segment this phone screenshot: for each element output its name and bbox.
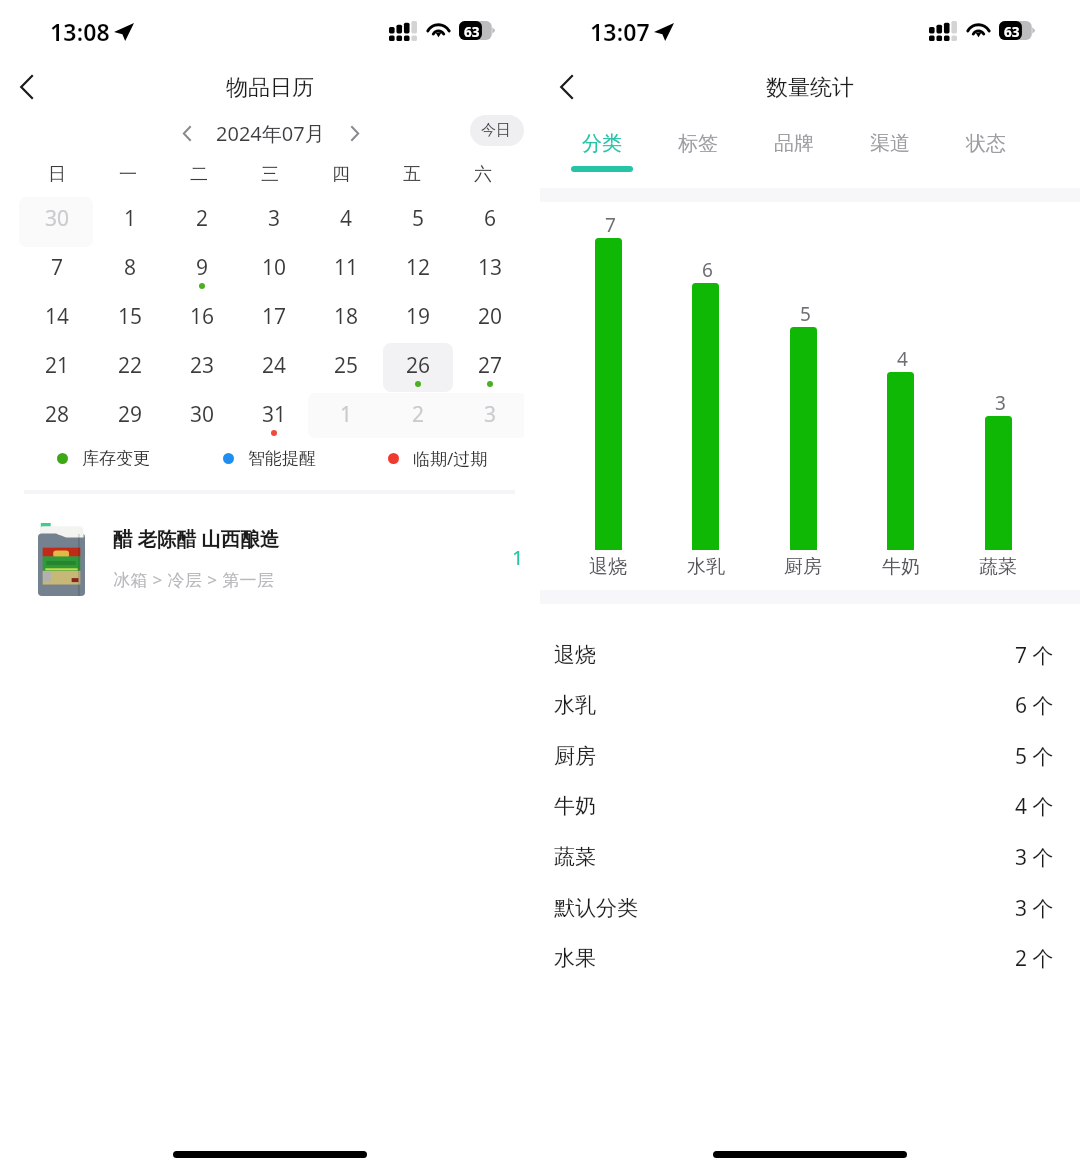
button[interactable]: 24 bbox=[239, 343, 309, 392]
button[interactable]: 13 bbox=[455, 245, 524, 294]
button[interactable]: 品牌 bbox=[746, 118, 842, 178]
button[interactable]: 分类 bbox=[554, 118, 650, 178]
button[interactable]: Next month bbox=[333, 116, 377, 150]
button[interactable]: 3 bbox=[455, 392, 524, 441]
staticText: 11 bbox=[334, 253, 359, 282]
button[interactable]: 醋 老陈醋 山西酿造 bbox=[0, 515, 524, 597]
button[interactable]: 1 bbox=[95, 196, 165, 245]
button[interactable]: 厨房 bbox=[540, 731, 1080, 781]
button[interactable]: 29 bbox=[95, 392, 165, 441]
button[interactable]: 20 bbox=[455, 294, 524, 343]
staticText: 10 bbox=[262, 253, 287, 282]
button[interactable]: 9 bbox=[167, 245, 237, 294]
staticText: 18 bbox=[334, 302, 359, 331]
button[interactable]: 2 bbox=[167, 196, 237, 245]
staticText: 牛奶 bbox=[554, 793, 596, 819]
button[interactable]: 25 bbox=[311, 343, 381, 392]
staticText: 20 bbox=[478, 302, 503, 331]
button[interactable]: 16 bbox=[167, 294, 237, 343]
button[interactable]: 4 bbox=[311, 196, 381, 245]
button[interactable]: 水乳 bbox=[540, 680, 1080, 730]
button[interactable]: 默认分类 bbox=[540, 883, 1080, 933]
button[interactable]: 31 bbox=[239, 392, 309, 441]
staticText: 2024年07月 bbox=[216, 120, 325, 147]
button[interactable]: 11 bbox=[311, 245, 381, 294]
staticText: 31 bbox=[262, 400, 287, 429]
staticText: 6 bbox=[484, 204, 497, 233]
button[interactable]: 6 bbox=[455, 196, 524, 245]
staticText: 六 bbox=[474, 163, 492, 186]
button[interactable]: 状态 bbox=[938, 118, 1034, 178]
button[interactable]: 22 bbox=[95, 343, 165, 392]
staticText: 智能提醒 bbox=[248, 448, 316, 469]
button[interactable]: 26 bbox=[383, 343, 453, 392]
button[interactable]: 水果 bbox=[540, 933, 1080, 983]
staticText: 26 bbox=[406, 351, 431, 380]
staticText: 8 bbox=[124, 253, 137, 282]
staticText: 物品日历 bbox=[226, 74, 314, 102]
button[interactable]: 2 bbox=[383, 392, 453, 441]
staticText: 22 bbox=[118, 351, 143, 380]
staticText: 9 bbox=[196, 253, 209, 282]
button[interactable]: 渠道 bbox=[842, 118, 938, 178]
button[interactable]: 19 bbox=[383, 294, 453, 343]
button[interactable]: 12 bbox=[383, 245, 453, 294]
staticText: 3 个 bbox=[1015, 894, 1054, 923]
staticText: 5 bbox=[800, 301, 811, 327]
button[interactable]: 退烧 bbox=[540, 630, 1080, 680]
staticText: 蔬菜 bbox=[979, 555, 1017, 579]
button[interactable]: 标签 bbox=[650, 118, 746, 178]
button[interactable]: 10 bbox=[239, 245, 309, 294]
button[interactable]: 3 bbox=[239, 196, 309, 245]
button[interactable]: 30 bbox=[167, 392, 237, 441]
button[interactable]: 18 bbox=[311, 294, 381, 343]
button[interactable]: 23 bbox=[167, 343, 237, 392]
staticText: 6 个 bbox=[1015, 691, 1054, 720]
staticText: 3 个 bbox=[1015, 843, 1054, 872]
staticText: 7 bbox=[605, 212, 616, 238]
staticText: 5 个 bbox=[1015, 742, 1054, 771]
button[interactable]: 30 bbox=[22, 196, 93, 245]
button[interactable]: 牛奶 bbox=[540, 781, 1080, 831]
staticText: 二 bbox=[190, 163, 208, 186]
button[interactable]: 7 bbox=[22, 245, 93, 294]
staticText: 25 bbox=[334, 351, 359, 380]
button[interactable]: Back bbox=[549, 70, 583, 104]
button[interactable]: 蔬菜 bbox=[540, 832, 1080, 882]
button[interactable]: 17 bbox=[239, 294, 309, 343]
staticText: 分类 bbox=[582, 131, 622, 156]
button[interactable]: 28 bbox=[22, 392, 93, 441]
button[interactable]: 今日 bbox=[470, 115, 524, 146]
staticText: 16 bbox=[190, 302, 215, 331]
staticText: 1 bbox=[512, 544, 524, 571]
staticText: 退烧 bbox=[589, 555, 627, 579]
button[interactable]: 14 bbox=[22, 294, 93, 343]
button[interactable]: 5 bbox=[383, 196, 453, 245]
staticText: 冰箱 > 冷层 > 第一层 bbox=[113, 568, 275, 591]
staticText: 水乳 bbox=[554, 692, 596, 718]
staticText: 29 bbox=[118, 400, 143, 429]
staticText: 五 bbox=[403, 163, 421, 186]
button[interactable]: 1 bbox=[311, 392, 381, 441]
staticText: 30 bbox=[45, 204, 70, 233]
staticText: 13:07 bbox=[590, 16, 650, 47]
button[interactable]: 21 bbox=[22, 343, 93, 392]
staticText: 12 bbox=[406, 253, 431, 282]
staticText: 库存变更 bbox=[82, 448, 150, 469]
button[interactable]: 27 bbox=[455, 343, 524, 392]
button[interactable]: 8 bbox=[95, 245, 165, 294]
button[interactable]: 15 bbox=[95, 294, 165, 343]
button[interactable]: Back bbox=[9, 70, 43, 104]
staticText: 3 bbox=[268, 204, 281, 233]
staticText: 13:08 bbox=[50, 16, 110, 47]
staticText: 63 bbox=[1004, 23, 1020, 41]
staticText: 3 bbox=[484, 400, 497, 429]
staticText: 7 bbox=[51, 253, 64, 282]
staticText: 13 bbox=[478, 253, 503, 282]
button[interactable]: Previous month bbox=[164, 116, 208, 150]
staticText: 醋 老陈醋 山西酿造 bbox=[113, 525, 280, 552]
staticText: 2 bbox=[412, 400, 425, 429]
staticText: 一 bbox=[119, 163, 137, 186]
staticText: 数量统计 bbox=[766, 74, 854, 102]
staticText: 14 bbox=[45, 302, 70, 331]
